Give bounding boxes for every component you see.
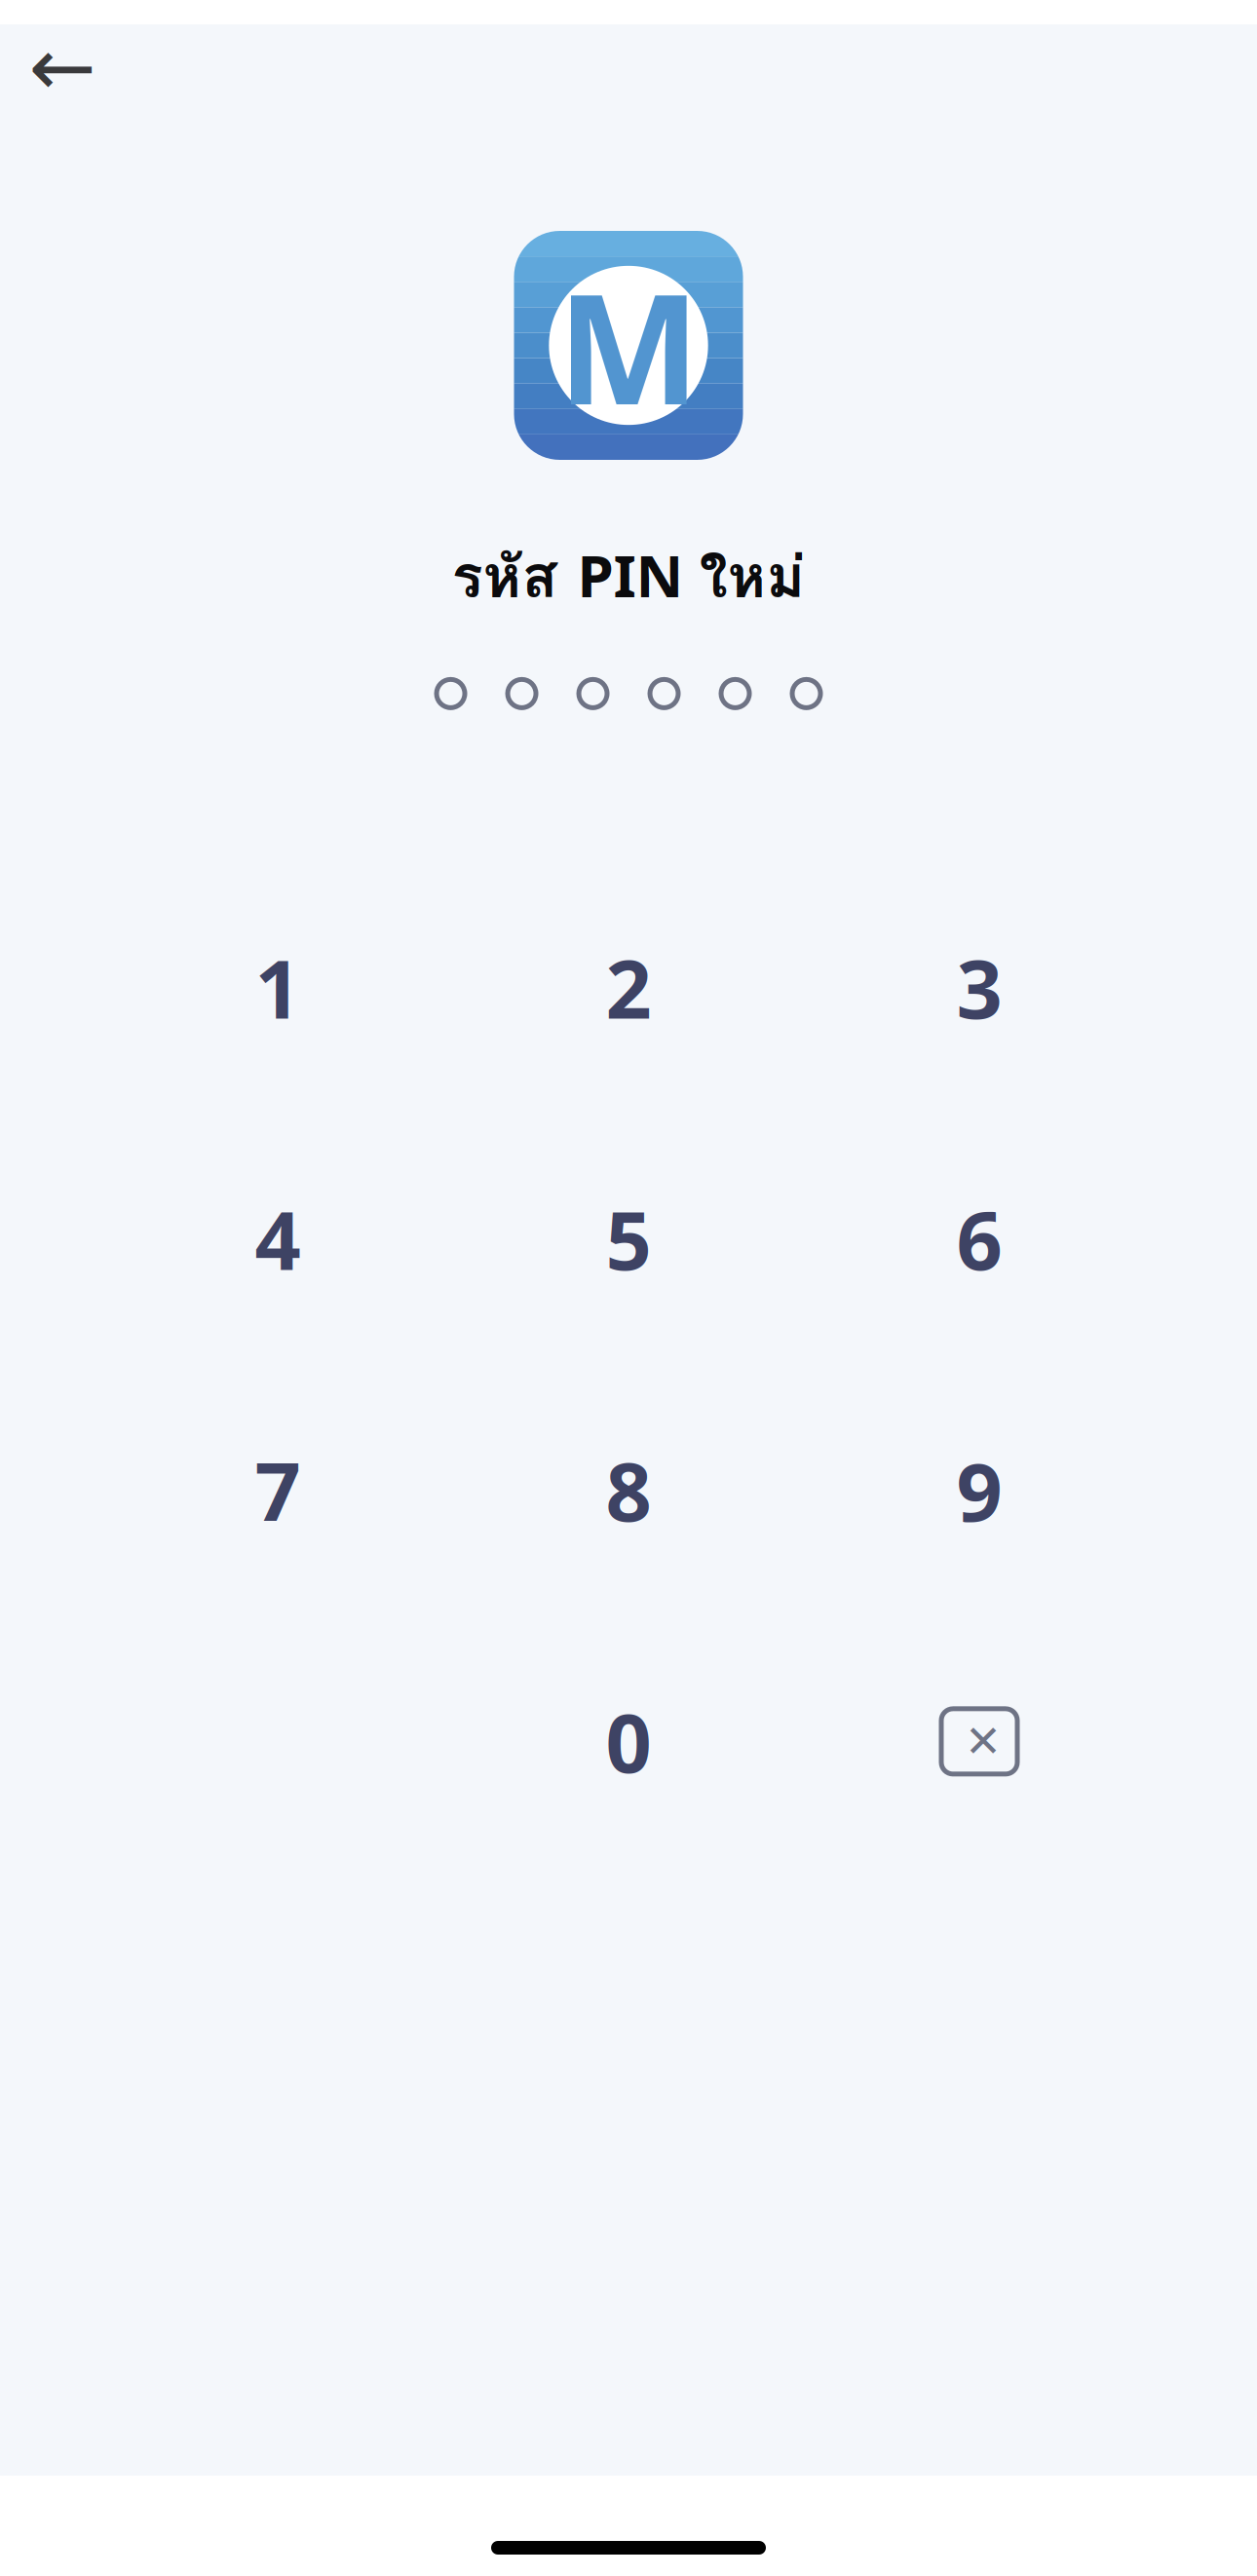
button[interactable]: 8 xyxy=(523,1417,734,1563)
button[interactable]: Delete xyxy=(874,1668,1085,1815)
staticText: รหัส PIN ใหม่ xyxy=(452,530,805,623)
button[interactable]: 3 xyxy=(874,914,1085,1060)
button[interactable]: 7 xyxy=(172,1417,383,1563)
staticText: 6 xyxy=(956,1184,1002,1294)
button[interactable]: Back xyxy=(0,32,121,102)
staticText: 8 xyxy=(606,1435,651,1545)
button[interactable]: 2 xyxy=(523,914,734,1060)
staticText: 3 xyxy=(956,932,1002,1042)
staticText: 5 xyxy=(606,1184,651,1294)
staticText: 1 xyxy=(255,932,301,1042)
staticText: 2 xyxy=(606,932,651,1042)
staticText: 7 xyxy=(255,1435,301,1545)
staticText: M xyxy=(557,242,700,449)
button[interactable]: 1 xyxy=(172,914,383,1060)
button[interactable]: 9 xyxy=(874,1417,1085,1563)
staticText: ✕ xyxy=(965,1716,1002,1767)
button[interactable]: 0 xyxy=(523,1668,734,1815)
staticText: ← xyxy=(29,22,96,113)
button[interactable]: 6 xyxy=(874,1166,1085,1312)
staticText: 0 xyxy=(606,1687,651,1796)
staticText: 9 xyxy=(956,1435,1002,1545)
button[interactable]: 5 xyxy=(523,1166,734,1312)
button[interactable]: 4 xyxy=(172,1166,383,1312)
staticText: 4 xyxy=(255,1184,301,1294)
